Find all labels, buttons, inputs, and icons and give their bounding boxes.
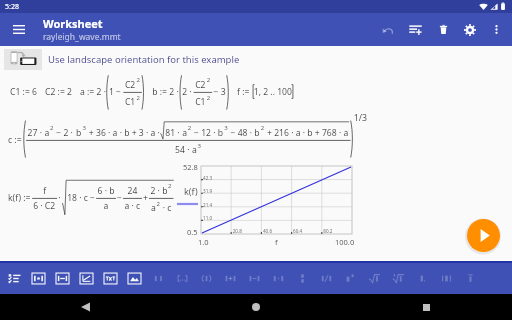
button[interactable]: Conjugate bbox=[458, 263, 482, 294]
button[interactable]: Power bbox=[338, 263, 362, 294]
staticText: rayleigh_wave.mmt bbox=[43, 31, 121, 43]
button[interactable]: Norm bbox=[434, 263, 458, 294]
button[interactable]: Sum bbox=[218, 263, 242, 294]
button[interactable]: Absolute value bbox=[146, 263, 170, 294]
button[interactable]: Parentheses bbox=[194, 263, 218, 294]
button[interactable]: Add row bbox=[401, 13, 429, 46]
button[interactable]: Recent apps bbox=[341, 294, 512, 320]
button[interactable]: Back bbox=[0, 294, 170, 320]
staticText: Worksheet bbox=[43, 16, 103, 31]
button[interactable]: Delete bbox=[429, 13, 457, 46]
button[interactable]: Square root bbox=[362, 263, 386, 294]
staticText: 5:28 bbox=[5, 2, 19, 12]
button[interactable]: Nth root bbox=[386, 263, 410, 294]
button[interactable]: Image bbox=[122, 263, 146, 294]
button[interactable]: Settings bbox=[457, 13, 483, 46]
button[interactable]: Definition bbox=[2, 263, 26, 294]
button[interactable]: Navigation menu bbox=[0, 13, 38, 46]
button[interactable]: More options bbox=[483, 13, 509, 46]
button[interactable]: Matrix bbox=[26, 263, 50, 294]
button[interactable]: Text bbox=[98, 263, 122, 294]
button[interactable]: Multiply bbox=[266, 263, 290, 294]
button[interactable]: Fraction bbox=[314, 263, 338, 294]
button[interactable]: Vector bbox=[50, 263, 74, 294]
button[interactable]: Home bbox=[170, 294, 341, 320]
button[interactable]: Subtract bbox=[242, 263, 266, 294]
button[interactable]: Undo bbox=[375, 13, 401, 46]
staticText: Use landscape orientation for this examp… bbox=[48, 53, 240, 66]
button[interactable]: Ellipsis bbox=[170, 263, 194, 294]
button[interactable]: Divide stack bbox=[290, 263, 314, 294]
button[interactable]: Plot bbox=[74, 263, 98, 294]
button[interactable]: Run worksheet bbox=[467, 219, 500, 252]
button[interactable]: Subscript bbox=[410, 263, 434, 294]
